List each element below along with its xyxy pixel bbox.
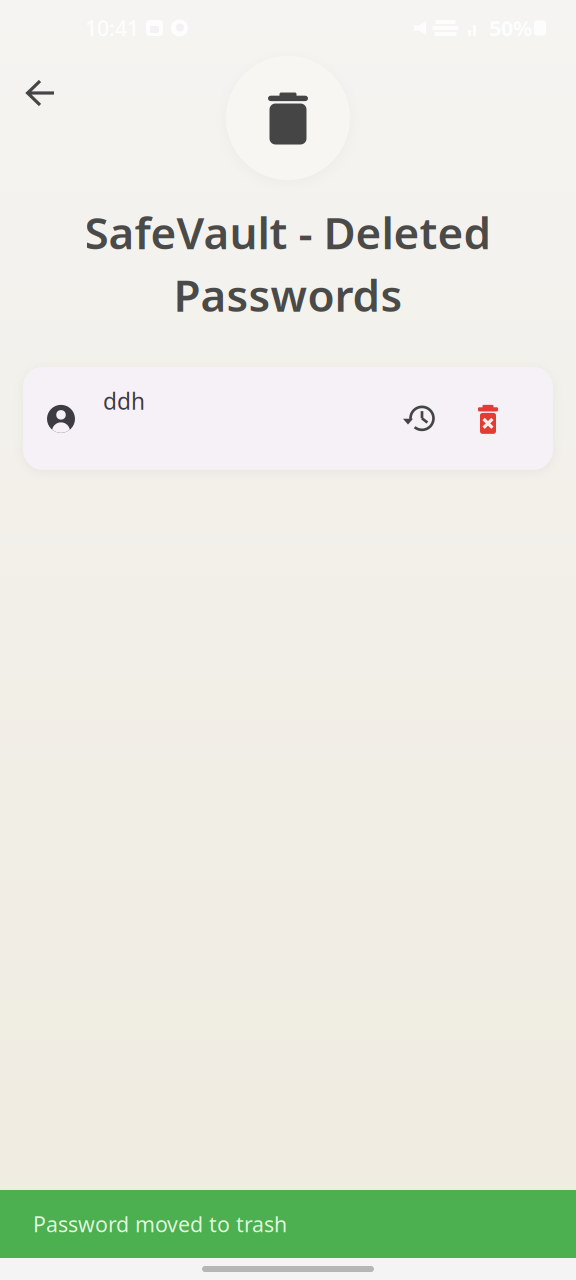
button[interactable]: Delete permanently — [460, 390, 516, 446]
staticText: Password moved to trash — [33, 1210, 287, 1238]
staticText: SafeVault - Deleted — [84, 203, 491, 261]
button[interactable]: Back — [12, 65, 68, 121]
staticText: 10:41 — [85, 14, 139, 42]
staticText: ddh — [103, 386, 145, 416]
button[interactable]: Restore password — [391, 390, 447, 446]
staticText: 50% — [489, 14, 532, 42]
staticText: Passwords — [173, 265, 402, 324]
